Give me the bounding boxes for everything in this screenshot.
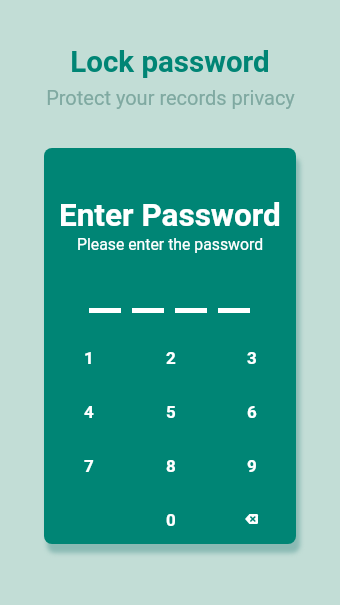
button[interactable]: 6 [211,385,292,439]
other: Backspace [245,514,258,524]
staticText: 3 [247,348,257,368]
staticText: 9 [247,456,257,476]
button[interactable]: 4 [48,385,130,439]
staticText: 8 [166,456,176,476]
staticText: 6 [247,402,257,422]
staticText: Enter Password [59,197,281,234]
staticText: 7 [84,456,94,476]
button[interactable]: Backspace [211,493,292,544]
staticText: Protect your records privacy [46,86,295,109]
staticText: Please enter the password [77,235,264,254]
staticText: Lock password [70,45,270,80]
button[interactable]: 1 [48,331,130,385]
staticText: 5 [166,402,176,422]
button[interactable]: 0 [130,493,211,544]
button[interactable]: 3 [211,331,292,385]
staticText: 1 [84,348,94,368]
staticText: 0 [166,510,176,530]
button[interactable]: 5 [130,385,211,439]
button[interactable]: 7 [48,439,130,493]
button[interactable]: 8 [130,439,211,493]
staticText: 2 [166,348,176,368]
button[interactable]: 9 [211,439,292,493]
staticText: 4 [84,402,94,422]
button[interactable]: 2 [130,331,211,385]
